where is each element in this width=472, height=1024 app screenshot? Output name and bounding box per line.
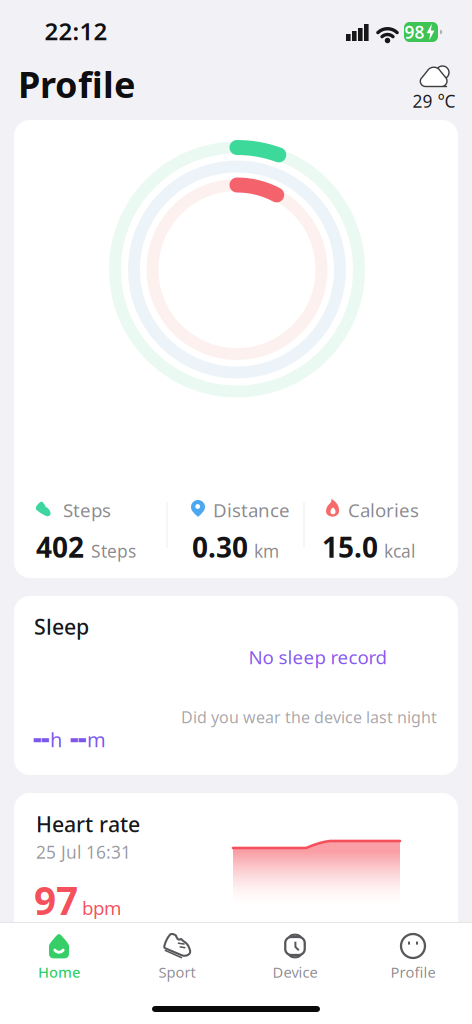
staticText: Profile	[18, 60, 135, 108]
staticText: Profile	[390, 962, 435, 982]
staticText: km	[254, 540, 279, 563]
button[interactable]: Steps	[14, 120, 458, 578]
staticText: Distance	[213, 498, 290, 522]
staticText: Calories	[348, 498, 419, 522]
staticText: Heart rate	[36, 810, 140, 838]
staticText: 402	[36, 528, 84, 566]
button[interactable]: Heart rate	[14, 793, 458, 1024]
button[interactable]: Device	[255, 922, 335, 986]
button[interactable]: Sleep	[14, 596, 458, 775]
staticText: Home	[38, 962, 80, 982]
staticText: --	[63, 719, 86, 755]
button[interactable]: Sport	[137, 922, 217, 986]
staticText: 25 Jul 16:31	[36, 840, 131, 863]
staticText: Sport	[158, 962, 195, 982]
staticText: 29 °C	[412, 89, 455, 112]
staticText: Steps	[91, 540, 136, 563]
staticText: Steps	[63, 498, 111, 522]
staticText: --	[33, 719, 49, 755]
button[interactable]: Home	[19, 922, 99, 986]
staticText: 0.30	[192, 528, 248, 566]
staticText: 98	[404, 20, 424, 43]
staticText: bpm	[82, 895, 121, 920]
staticText: Did you wear the device last night	[181, 706, 437, 728]
staticText: Device	[272, 962, 317, 982]
staticText: Sleep	[34, 612, 89, 641]
staticText: 15.0	[322, 528, 378, 566]
staticText: h	[50, 726, 62, 753]
staticText: 97	[34, 874, 78, 926]
staticText: kcal	[384, 540, 415, 563]
button[interactable]: Profile	[373, 922, 453, 986]
staticText: No sleep record	[248, 645, 386, 669]
staticText: 22:12	[44, 15, 107, 47]
staticText: m	[87, 726, 106, 753]
